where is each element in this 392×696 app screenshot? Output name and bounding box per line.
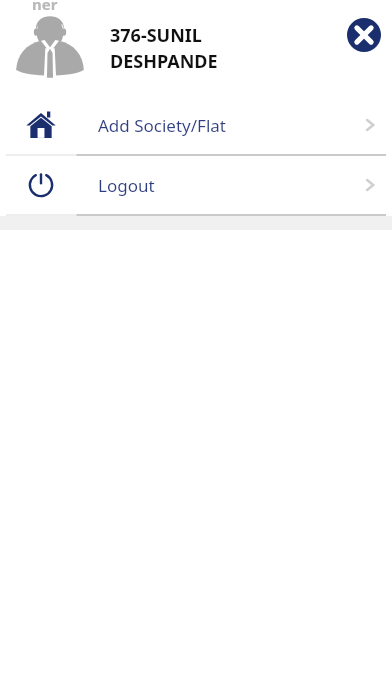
button[interactable]: Add Society/Flat [0,96,392,154]
staticText: ner [32,0,58,14]
staticText: Add Society/Flat [98,114,348,137]
staticText: 376-SUNIL DESHPANDE [110,23,218,74]
button[interactable]: Logout [0,156,392,214]
staticText: Logout [98,174,348,197]
button[interactable]: Close [347,18,381,52]
